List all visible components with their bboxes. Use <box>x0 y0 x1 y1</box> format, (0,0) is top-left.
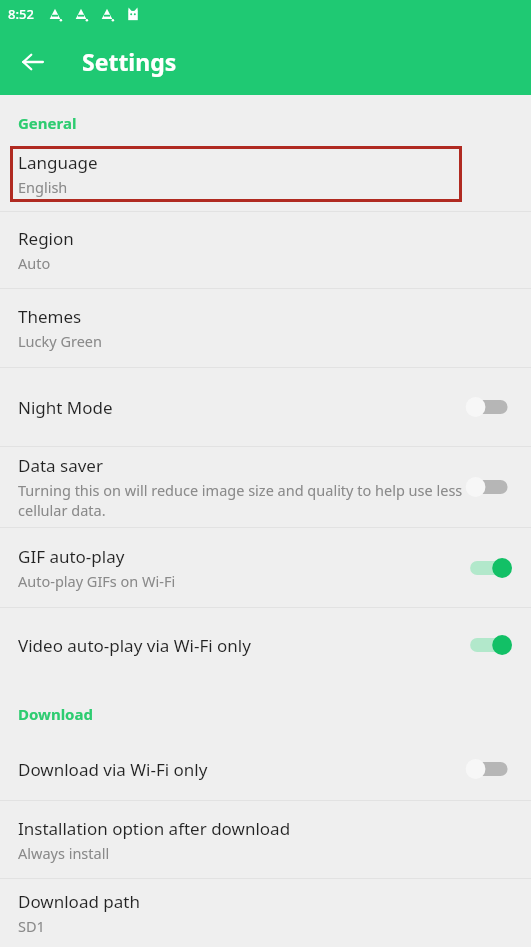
button[interactable]: Video auto-play via Wi-Fi only <box>0 608 531 682</box>
staticText: Themes <box>18 305 82 328</box>
staticText: Lucky Green <box>18 331 102 351</box>
staticText: Language <box>18 151 98 174</box>
button[interactable]: GIF auto-play <box>467 548 519 588</box>
staticText: 8:52 <box>8 5 34 23</box>
staticText: Download via Wi-Fi only <box>18 758 208 781</box>
button[interactable]: Back <box>12 41 54 83</box>
button[interactable]: Download via Wi-Fi only <box>0 738 531 800</box>
button[interactable]: Themes <box>0 289 531 367</box>
staticText: SD1 <box>18 916 45 936</box>
staticText: English <box>18 177 68 197</box>
button[interactable]: Download path <box>0 879 531 947</box>
button[interactable]: Data saver <box>467 467 519 507</box>
staticText: Download <box>18 704 93 724</box>
staticText: Installation option after download <box>18 817 291 840</box>
staticText: Download path <box>18 890 140 913</box>
button[interactable]: Data saver <box>0 447 531 527</box>
button[interactable]: Night Mode <box>467 387 519 427</box>
button[interactable]: Installation option after download <box>0 801 531 878</box>
staticText: General <box>18 113 77 133</box>
staticText: Auto <box>18 253 51 273</box>
staticText: Region <box>18 227 74 250</box>
button[interactable]: Language <box>0 146 531 202</box>
button[interactable]: Video auto-play via Wi-Fi only <box>467 625 519 665</box>
staticText: Data saver <box>18 454 103 477</box>
staticText: Auto-play GIFs on Wi-Fi <box>18 571 176 591</box>
staticText: GIF auto-play <box>18 545 125 568</box>
staticText: Video auto-play via Wi-Fi only <box>18 634 251 657</box>
staticText: Turning this on will reduce image size a… <box>18 480 467 520</box>
button[interactable]: Download via Wi-Fi only <box>467 749 519 789</box>
button[interactable]: Region <box>0 212 531 288</box>
button[interactable]: GIF auto-play <box>0 528 531 607</box>
button[interactable]: Night Mode <box>0 368 531 446</box>
staticText: Night Mode <box>18 396 113 419</box>
staticText: Always install <box>18 843 110 863</box>
staticText: Settings <box>82 46 177 77</box>
